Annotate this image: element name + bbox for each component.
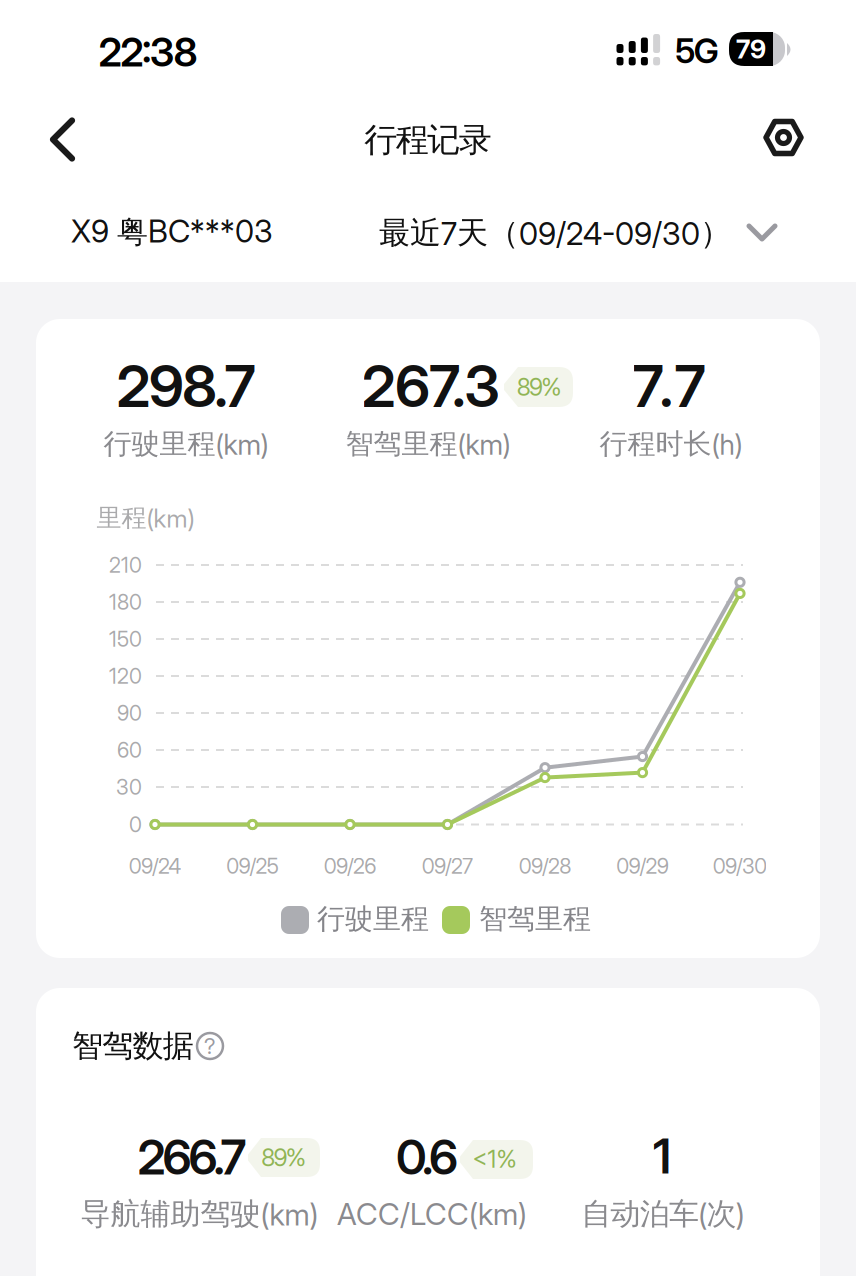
staticText: 1	[653, 1127, 671, 1185]
button[interactable]: X9 粤BC***03	[71, 212, 351, 252]
staticText: 智驾里程(km)	[345, 426, 510, 462]
staticText: 行驶里程	[317, 901, 429, 937]
staticText: 09/27	[422, 853, 473, 879]
button[interactable]	[42, 114, 86, 164]
staticText: 0	[129, 812, 142, 837]
staticText: <1%	[472, 1144, 516, 1173]
staticText: 0.6	[396, 1128, 458, 1186]
staticText: 90	[117, 700, 142, 726]
staticText: 150	[109, 626, 142, 652]
button[interactable]: ?	[190, 1026, 230, 1066]
staticText: 智驾里程	[479, 901, 591, 937]
staticText: 导航辅助驾驶(km)	[80, 1195, 318, 1233]
staticText: 7.7	[632, 351, 705, 421]
staticText: 267.3	[362, 351, 500, 421]
staticText: 266.7	[137, 1128, 246, 1186]
staticText: 30	[116, 774, 142, 800]
staticText: ?	[204, 1033, 216, 1059]
staticText: 298.7	[117, 351, 255, 421]
staticText: 智驾数据	[72, 1026, 194, 1066]
button[interactable]: 最近7天（09/24-09/30）	[379, 213, 777, 253]
staticText: 行程记录	[364, 119, 492, 161]
staticText: 89%	[261, 1143, 306, 1172]
staticText: 09/25	[226, 853, 279, 879]
button[interactable]	[751, 107, 815, 167]
staticText: 自动泊车(次)	[581, 1195, 745, 1233]
staticText: 120	[109, 663, 142, 689]
staticText: 行驶里程(km)	[103, 426, 268, 462]
staticText: 79	[736, 33, 766, 65]
staticText: 210	[109, 552, 142, 578]
staticText: ACC/LCC(km)	[337, 1196, 527, 1232]
staticText: 09/26	[324, 853, 376, 879]
staticText: 09/29	[616, 853, 669, 879]
staticText: X9 粤BC***03	[71, 212, 273, 252]
staticText: 里程(km)	[96, 502, 194, 534]
staticText: 09/24	[129, 853, 181, 879]
staticText: 最近7天（09/24-09/30）	[379, 213, 731, 253]
staticText: 60	[117, 737, 142, 763]
staticText: 行程时长(h)	[599, 426, 742, 462]
staticText: 180	[109, 589, 142, 615]
staticText: 5G	[675, 30, 719, 71]
staticText: 22:38	[98, 28, 198, 76]
staticText: 09/28	[519, 853, 571, 879]
staticText: 89%	[517, 372, 561, 401]
staticText: 09/30	[713, 853, 767, 879]
